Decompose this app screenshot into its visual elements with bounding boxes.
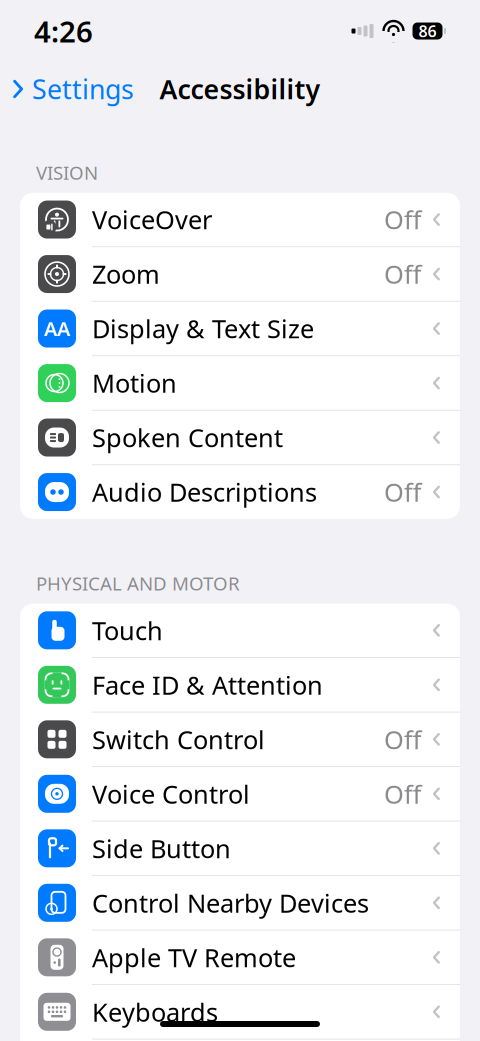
staticText: Keyboards xyxy=(92,995,218,1029)
staticText: Display & Text Size xyxy=(92,312,314,345)
staticText: Settings xyxy=(32,71,134,107)
button[interactable]: Spoken Content xyxy=(20,411,460,465)
button[interactable]: Side Button xyxy=(20,822,460,876)
staticText: Voice Control xyxy=(92,777,250,811)
button[interactable]: AA xyxy=(20,302,460,356)
button[interactable]: Touch xyxy=(20,604,460,658)
staticText: Off xyxy=(384,722,421,756)
staticText: Zoom xyxy=(92,257,160,291)
button[interactable]: Zoom xyxy=(20,247,460,302)
button[interactable]: Face ID & Attention xyxy=(20,658,460,713)
staticText: Spoken Content xyxy=(92,421,283,454)
staticText: Apple TV Remote xyxy=(92,940,296,974)
button[interactable]: Settings xyxy=(0,65,134,113)
staticText: Touch xyxy=(92,613,163,647)
staticText: Side Button xyxy=(92,831,231,865)
staticText: 86 xyxy=(418,20,436,42)
staticText: PHYSICAL AND MOTOR xyxy=(36,571,240,596)
button[interactable]: Control Nearby Devices xyxy=(20,876,460,931)
staticText: Switch Control xyxy=(92,722,265,756)
staticText: Control Nearby Devices xyxy=(92,886,369,920)
button[interactable]: Apple TV Remote xyxy=(20,931,460,985)
button[interactable]: Keyboards xyxy=(20,985,460,1040)
staticText: 4:26 xyxy=(34,11,93,50)
staticText: Off xyxy=(384,777,421,811)
button[interactable]: Voice Control xyxy=(20,767,460,822)
staticText: VoiceOver xyxy=(92,203,212,236)
staticText: Off xyxy=(384,257,421,291)
staticText: Off xyxy=(384,475,421,509)
button[interactable]: Switch Control xyxy=(20,713,460,767)
staticText: Motion xyxy=(92,366,177,400)
staticText: AA xyxy=(44,315,70,342)
button[interactable]: Audio Descriptions xyxy=(20,465,460,519)
button[interactable]: Motion xyxy=(20,356,460,411)
staticText: Face ID & Attention xyxy=(92,668,323,702)
staticText: Audio Descriptions xyxy=(92,475,317,509)
staticText: Accessibility xyxy=(159,71,320,107)
staticText: Off xyxy=(384,203,421,236)
button[interactable]: VoiceOver xyxy=(20,193,460,247)
staticText: VISION xyxy=(36,160,98,185)
